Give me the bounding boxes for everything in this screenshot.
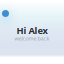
button[interactable]: Profile (2, 10, 9, 17)
staticText: welcome back (14, 35, 49, 42)
staticText: Hi Alex (16, 24, 47, 37)
